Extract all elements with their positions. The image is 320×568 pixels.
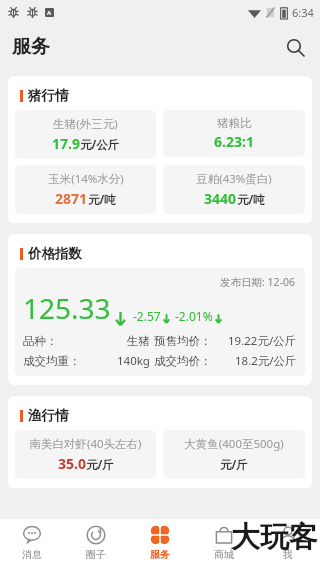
staticText: 商城 [214, 548, 234, 561]
staticText: 元/斤 [86, 457, 114, 473]
staticText: 19.22元/公斤 [228, 333, 297, 349]
staticText: 玉米(14%水分) [48, 171, 124, 187]
button[interactable]: 价格指数 [8, 234, 312, 385]
staticText: 18.2元/公斤 [235, 353, 297, 369]
staticText: 渔行情 [28, 407, 69, 424]
staticText: 125.33 [23, 289, 111, 327]
staticText: 豆粕(43%蛋白) [196, 171, 272, 187]
button[interactable]: 圈子 [64, 519, 128, 568]
staticText: 元/斤 [220, 457, 248, 473]
staticText: 元/吨 [88, 192, 116, 208]
staticText: 2871 [55, 189, 88, 208]
button[interactable]: 我 [256, 519, 320, 568]
staticText: 价格指数 [28, 245, 82, 262]
staticText: 预售均价： [154, 334, 212, 348]
staticText: A [47, 9, 52, 17]
staticText: 圈子 [86, 548, 106, 561]
button[interactable]: 渔行情 [8, 396, 312, 488]
staticText: 猪行情 [28, 87, 69, 104]
staticText: 消息 [22, 548, 42, 561]
button[interactable]: 猪行情 [8, 76, 312, 223]
button[interactable]: 玉米(14%水分) [15, 165, 156, 214]
staticText: -2.01% [175, 308, 213, 324]
button[interactable]: 大黄鱼(400至500g) [163, 430, 305, 479]
staticText: -2.57 [133, 308, 161, 324]
staticText: 生猪(外三元) [53, 116, 118, 132]
staticText: 35.0 [58, 454, 86, 473]
staticText: 6:34 [292, 5, 314, 20]
staticText: 成交均价： [154, 354, 212, 368]
button[interactable]: 服务 [128, 519, 192, 568]
staticText: 大玩客 [231, 519, 318, 556]
button[interactable]: 商城 [192, 519, 256, 568]
staticText: 6.23:1 [214, 132, 254, 151]
staticText: 服务 [12, 35, 50, 59]
staticText: 3440 [204, 189, 237, 208]
staticText: 成交均重： [23, 354, 81, 368]
staticText: 大黄鱼(400至500g) [184, 436, 284, 452]
staticText: 服务 [150, 548, 170, 561]
staticText: 猪粮比 [217, 116, 252, 130]
staticText: 品种： [23, 334, 58, 348]
staticText: 元/吨 [237, 192, 265, 208]
staticText: 发布日期: 12-06 [220, 275, 295, 289]
button[interactable]: 豆粕(43%蛋白) [163, 165, 305, 214]
staticText: 生猪 [127, 334, 150, 348]
staticText: 17.9 [52, 134, 80, 153]
button[interactable]: 猪粮比 [163, 110, 305, 157]
button[interactable]: 消息 [0, 519, 64, 568]
staticText: 南美白对虾(40头左右) [29, 436, 142, 452]
staticText: 140kg [117, 353, 150, 369]
staticText: 元/公斤 [80, 137, 120, 153]
button[interactable]: 南美白对虾(40头左右) [15, 430, 156, 479]
button[interactable]: 搜索 [278, 30, 312, 64]
button[interactable]: 生猪(外三元) [15, 110, 156, 159]
staticText: 我 [283, 548, 293, 561]
